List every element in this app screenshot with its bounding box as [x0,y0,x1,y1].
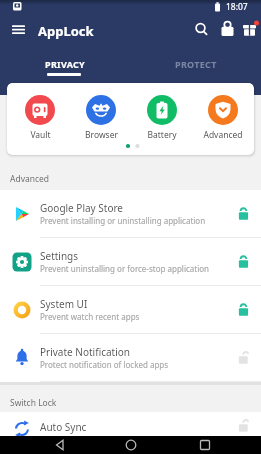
staticText: Advanced [10,173,50,185]
button[interactable] [218,19,237,38]
staticText: Prevent installing or uninstalling appli… [40,215,206,226]
button[interactable] [240,19,261,38]
staticText: Battery [147,129,177,141]
staticText: Switch Lock [10,397,57,409]
button[interactable]: Google Play Store [0,190,261,238]
staticText: Prevent uninstalling or force-stop appli… [40,263,210,274]
staticText: Vault [30,129,51,141]
staticText: Private Notification [40,345,130,359]
button[interactable]: Advanced [201,91,245,147]
button[interactable] [107,436,155,454]
staticText: Settings [40,249,79,263]
staticText: 18:07 [226,1,248,13]
button[interactable]: PRIVACY [0,48,130,80]
staticText: Protect notification of locked apps [40,359,169,370]
button[interactable]: Vault [18,91,62,147]
button[interactable] [8,21,40,39]
button[interactable]: Settings [0,238,261,286]
staticText: Google Play Store [40,201,124,215]
button[interactable]: Battery [140,91,184,147]
staticText: Auto Sync [40,420,87,434]
staticText: Advanced [203,129,243,141]
button[interactable] [0,412,261,436]
button[interactable] [192,20,211,39]
staticText: System UI [40,297,88,311]
button[interactable]: Private Notification [0,334,261,382]
button[interactable] [181,436,229,454]
staticText: Browser [85,129,118,141]
staticText: Prevent watch recent apps [40,311,140,322]
button[interactable]: PROTECT [131,48,261,80]
staticText: PRIVACY [45,58,86,70]
button[interactable]: Browser [79,91,123,147]
button[interactable] [35,436,83,454]
button[interactable]: System UI [0,286,261,334]
staticText: AppLock [38,22,94,40]
staticText: PROTECT [175,58,217,70]
